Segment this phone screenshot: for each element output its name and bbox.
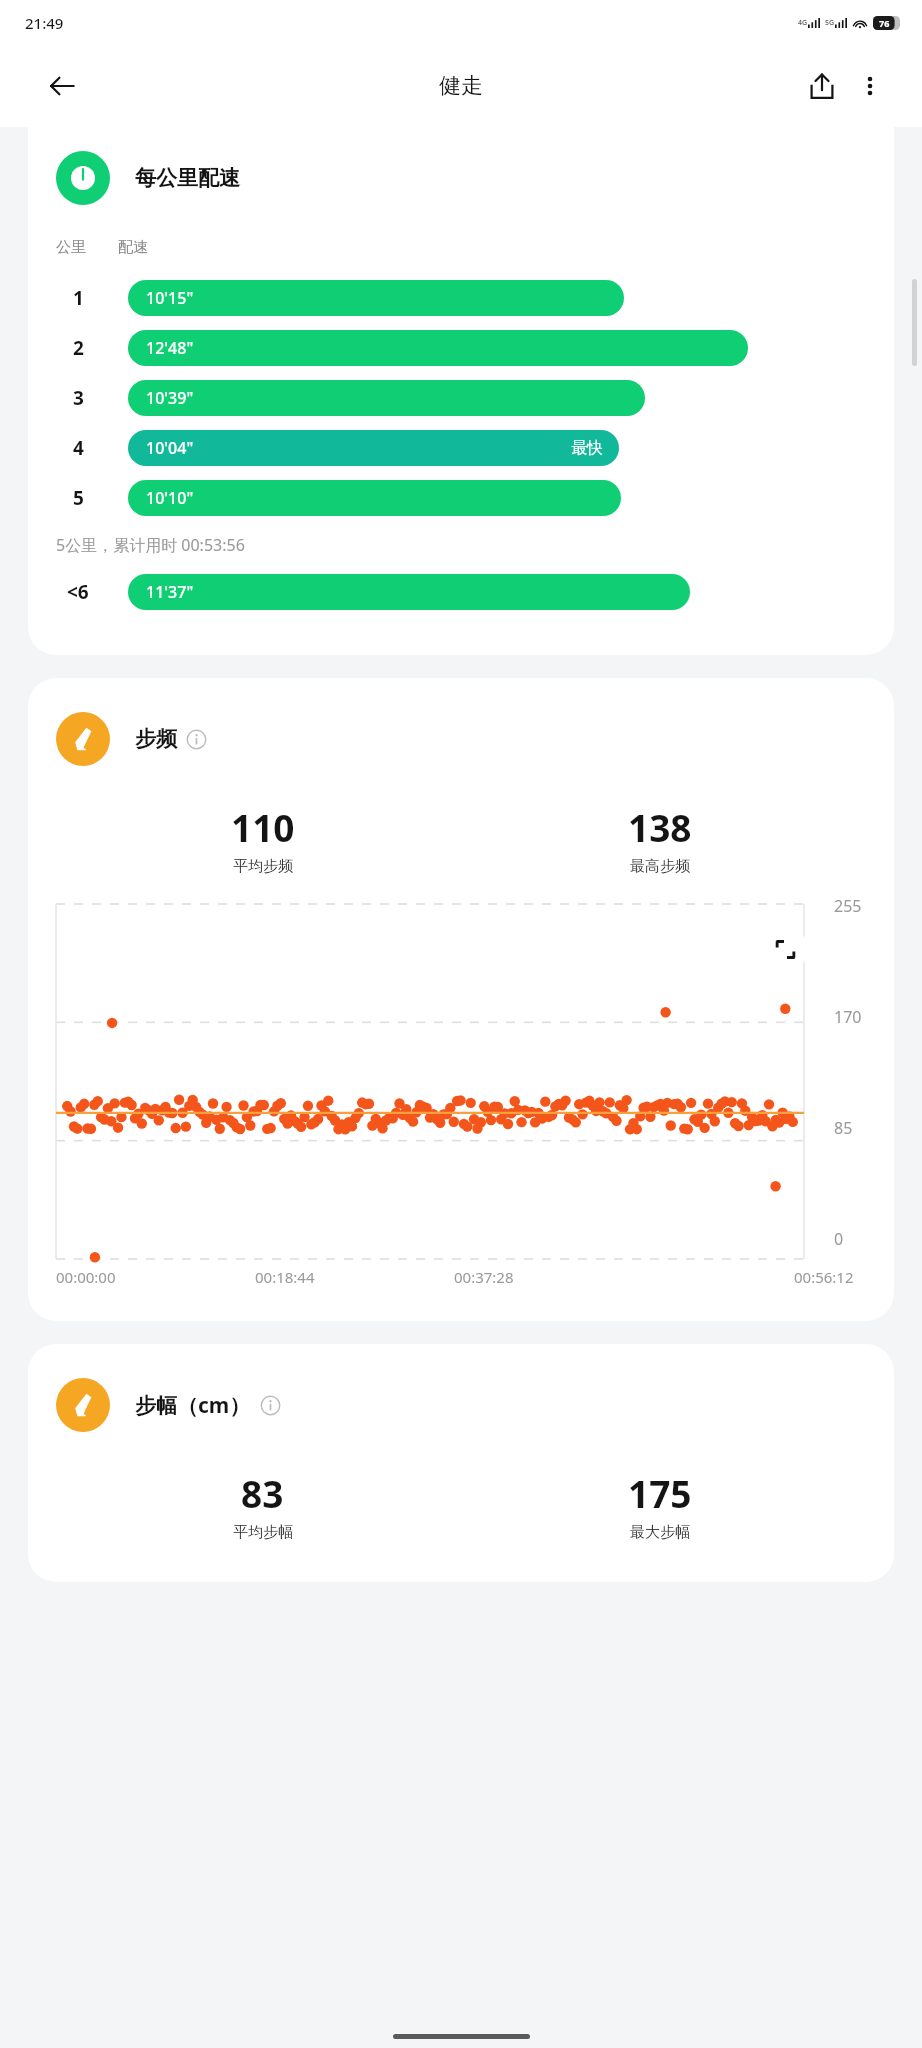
button[interactable]: 3 [28, 373, 894, 423]
staticText: 平均步幅 [233, 1523, 293, 1542]
staticText: 83 [241, 1468, 284, 1518]
button[interactable]: About cadence [186, 729, 207, 750]
staticText: 5G [825, 18, 835, 28]
staticText: 3 [73, 385, 84, 411]
staticText: <6 [67, 579, 89, 605]
button[interactable]: <6 [28, 567, 894, 617]
staticText: 76 [879, 17, 890, 29]
staticText: 10'10" [146, 487, 194, 509]
staticText: 1 [73, 285, 84, 311]
button[interactable]: 2 [28, 323, 894, 373]
staticText: 每公里配速 [135, 165, 240, 191]
button[interactable]: Expand chart [763, 927, 808, 972]
staticText: 10'04" [146, 437, 194, 459]
staticText: 5公里，累计用时 00:53:56 [56, 534, 245, 556]
staticText: 最快 [571, 438, 603, 458]
staticText: 平均步频 [233, 857, 293, 876]
staticText: 12'48" [146, 337, 194, 359]
staticText: 2 [73, 335, 84, 361]
staticText: 00:37:28 [454, 1267, 514, 1287]
staticText: 最大步幅 [630, 1523, 690, 1542]
staticText: 4G [798, 18, 808, 28]
staticText: 步幅（cm） [135, 1391, 251, 1420]
button[interactable]: More options [846, 62, 894, 110]
staticText: 00:56:12 [794, 1267, 854, 1287]
staticText: 85 [834, 1117, 853, 1139]
staticText: 步频 [135, 726, 177, 752]
staticText: 最高步频 [630, 857, 690, 876]
button[interactable]: Share [798, 62, 846, 110]
staticText: 10'15" [146, 287, 194, 309]
staticText: 5 [73, 485, 84, 511]
staticText: 175 [628, 1468, 692, 1518]
button[interactable]: Back [40, 64, 84, 108]
staticText: 11'37" [146, 581, 194, 603]
button[interactable]: 5 [28, 473, 894, 523]
staticText: 10'39" [146, 387, 194, 409]
staticText: 配速 [118, 238, 148, 257]
staticText: 00:00:00 [56, 1267, 116, 1287]
staticText: 公里 [56, 238, 86, 257]
staticText: 110 [231, 802, 295, 852]
staticText: 170 [834, 1006, 862, 1028]
button[interactable]: 1 [28, 273, 894, 323]
staticText: 138 [628, 802, 692, 852]
staticText: 0 [834, 1228, 844, 1250]
staticText: 255 [834, 895, 862, 917]
staticText: 4 [73, 435, 84, 461]
staticText: 21:49 [25, 13, 64, 33]
staticText: 健走 [439, 72, 483, 100]
staticText: 00:18:44 [255, 1267, 315, 1287]
button[interactable]: About stride [260, 1395, 281, 1416]
button[interactable]: 4 [28, 423, 894, 473]
